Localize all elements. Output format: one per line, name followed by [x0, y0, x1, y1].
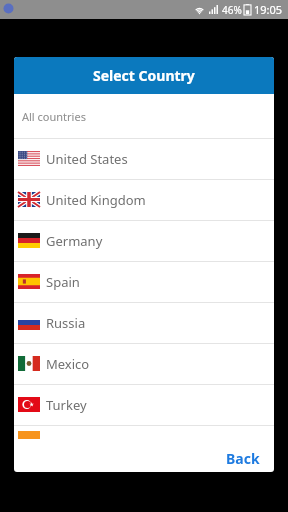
- button[interactable]: Mexico: [14, 343, 274, 384]
- staticText: Russia: [46, 314, 86, 332]
- button[interactable]: Back: [212, 441, 274, 472]
- button[interactable]: Germany: [14, 220, 274, 261]
- staticText: 19:05: [254, 2, 283, 17]
- button[interactable]: Spain: [14, 261, 274, 302]
- staticText: Spain: [46, 273, 80, 291]
- staticText: Select Country: [93, 66, 195, 85]
- button[interactable]: Turkey: [14, 384, 274, 425]
- staticText: Back: [226, 449, 260, 464]
- staticText: Mexico: [46, 355, 90, 373]
- staticText: United States: [46, 150, 128, 168]
- button[interactable]: United Kingdom: [14, 179, 274, 220]
- staticText: Germany: [46, 232, 103, 250]
- staticText: Turkey: [46, 396, 87, 414]
- staticText: All countries: [22, 109, 86, 124]
- staticText: 46%: [222, 3, 242, 17]
- button[interactable]: [14, 425, 274, 441]
- button[interactable]: Russia: [14, 302, 274, 343]
- staticText: United Kingdom: [46, 191, 146, 209]
- button[interactable]: United States: [14, 138, 274, 179]
